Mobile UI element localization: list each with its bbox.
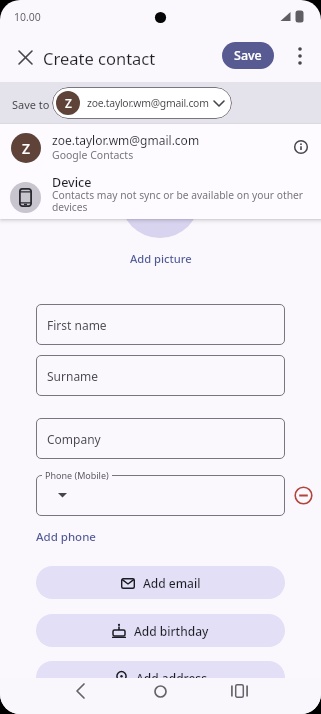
button[interactable] [0, 171, 321, 221]
button[interactable] [292, 138, 310, 156]
staticText: Device [52, 174, 92, 191]
staticText: Surname [47, 368, 99, 384]
button[interactable]: Company [36, 418, 285, 459]
button[interactable] [146, 677, 174, 705]
staticText: Phone (Mobile) [45, 469, 109, 481]
staticText: Add address [136, 670, 207, 686]
staticText: Google Contacts [52, 148, 134, 162]
staticText: Save to [12, 97, 50, 112]
button[interactable] [36, 475, 285, 516]
button[interactable] [225, 677, 253, 705]
staticText: Add email [143, 575, 201, 591]
button[interactable]: Surname [36, 355, 285, 396]
staticText: Z [22, 139, 31, 158]
staticText: Contacts may not sync or be available on… [52, 188, 304, 202]
button[interactable] [66, 677, 94, 705]
button[interactable]: First name [36, 304, 285, 345]
staticText: Add phone [36, 529, 96, 545]
button[interactable] [292, 484, 315, 507]
staticText: zoe.taylor.wm@gmail.com [87, 96, 209, 110]
button[interactable] [290, 46, 310, 66]
button[interactable]: Add address [36, 661, 285, 694]
staticText: zoe.taylor.wm@gmail.com [52, 132, 200, 148]
staticText: devices [52, 200, 88, 214]
staticText: First name [47, 317, 107, 333]
staticText: Create contact [43, 47, 156, 69]
staticText: Company [47, 431, 101, 447]
staticText: Z [65, 95, 72, 111]
button[interactable]: Add email [36, 566, 285, 599]
button[interactable]: Z [52, 87, 232, 119]
staticText: Save [234, 47, 262, 64]
button[interactable]: Add picture [130, 251, 192, 266]
button[interactable] [12, 44, 38, 70]
staticText: Add birthday [134, 623, 209, 639]
button[interactable]: Add phone [36, 529, 96, 545]
staticText: Add picture [130, 251, 192, 266]
staticText: 10.00 [14, 10, 41, 24]
button[interactable] [0, 124, 321, 171]
button[interactable]: Add birthday [36, 614, 285, 647]
button[interactable]: Save [222, 42, 274, 69]
